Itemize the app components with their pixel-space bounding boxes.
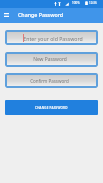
button[interactable]: Open navigation menu (1, 8, 12, 23)
button[interactable]: CHANGE PASSWORD (5, 100, 98, 115)
staticText: 12:36 (89, 1, 97, 5)
staticText: Change Password (18, 11, 64, 18)
staticText: New Password (33, 56, 67, 63)
staticText: Confirm Password (30, 78, 69, 84)
button[interactable]: Enter your old Password (5, 30, 98, 45)
staticText: 100% (72, 1, 80, 5)
staticText: Enter your old Password (23, 35, 83, 42)
button[interactable]: New Password (5, 52, 98, 67)
staticText: CHANGE PASSWORD (35, 106, 68, 110)
button[interactable]: Confirm Password (5, 73, 98, 88)
